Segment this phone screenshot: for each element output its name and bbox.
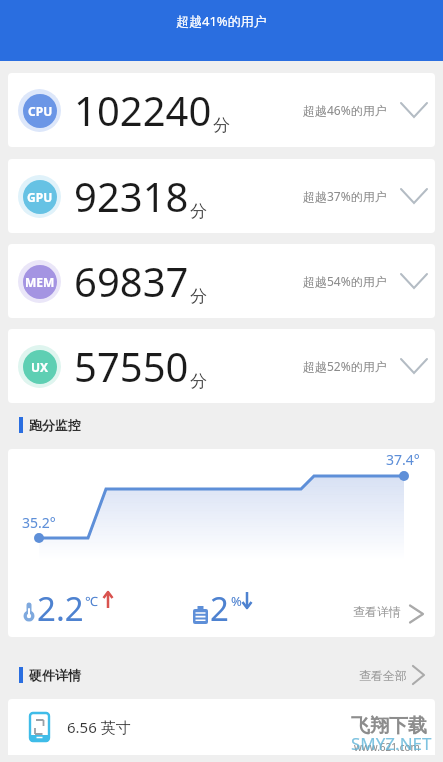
staticText: ℃ [85, 592, 98, 610]
staticText: 查看详情 [353, 604, 401, 619]
staticText: SMYZ.NET [351, 732, 432, 755]
staticText: 飞翔下载 [351, 714, 427, 738]
staticText: 超越37%的用户 [303, 188, 387, 204]
staticText: 2.2 [37, 586, 84, 631]
button[interactable]: 查看详情 [348, 599, 432, 629]
staticText: 超越46%的用户 [303, 102, 387, 118]
button[interactable]: 6.56 英寸 [8, 699, 435, 755]
staticText: 跑分监控 [29, 417, 81, 433]
button[interactable]: 35.2° [8, 449, 435, 637]
staticText: 92318 [74, 169, 189, 223]
staticText: 超越41%的用户 [176, 12, 267, 30]
staticText: 查看全部 [359, 668, 407, 683]
button[interactable]: MEM [8, 244, 435, 318]
staticText: % [231, 592, 242, 610]
staticText: www.621.com [354, 740, 420, 754]
staticText: 硬件详情 [29, 667, 81, 683]
staticText: 超越52%的用户 [303, 358, 387, 374]
staticText: 35.2° [22, 513, 56, 532]
staticText: CPU [28, 103, 53, 119]
staticText: MEM [25, 274, 55, 290]
staticText: 分 [213, 115, 230, 136]
button[interactable]: UX [8, 329, 435, 403]
button[interactable]: CPU [8, 73, 435, 147]
staticText: GPU [27, 189, 53, 205]
staticText: 分 [190, 371, 207, 392]
staticText: 37.4° [386, 450, 420, 469]
button[interactable]: 查看全部 [359, 666, 424, 684]
staticText: 102240 [74, 83, 212, 137]
staticText: 6.56 英寸 [67, 717, 131, 737]
staticText: UX [31, 359, 49, 375]
staticText: 2 [210, 586, 229, 631]
staticText: 分 [190, 286, 207, 307]
staticText: 69837 [74, 254, 189, 308]
staticText: 超越54%的用户 [303, 273, 387, 289]
button[interactable]: GPU [8, 159, 435, 233]
staticText: 分 [190, 201, 207, 222]
staticText: 57550 [74, 339, 189, 393]
